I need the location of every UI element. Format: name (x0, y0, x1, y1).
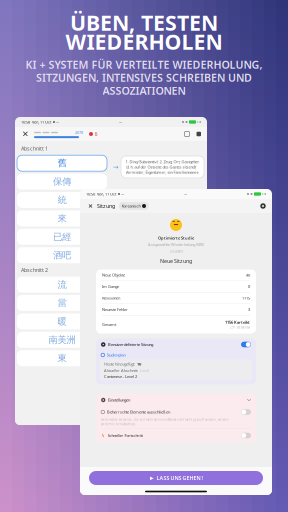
button[interactable]: ▶ (80, 467, 272, 488)
button[interactable]: Umschalten (241, 433, 251, 438)
button[interactable]: Tastatur (196, 132, 201, 136)
staticText: Im Gange (102, 284, 119, 289)
button[interactable]: 暖 (15, 312, 107, 331)
staticText: 4078 (75, 130, 83, 135)
staticText: ASSOZIATIONEN (102, 83, 185, 98)
staticText: Schneller Fortschritt (107, 433, 142, 438)
staticText: Revisionen (102, 295, 120, 301)
button[interactable]: Schließen (21, 128, 30, 139)
staticText: ··· (119, 118, 122, 126)
staticText: WIEDERHOLEN (65, 27, 222, 56)
staticText: Beherrschte Elemente ausschließen (107, 409, 170, 415)
staticText: 南美洲 (48, 334, 75, 346)
staticText: 10 (137, 361, 141, 367)
staticText: Optimierte Studie (158, 235, 194, 241)
button[interactable]: 舊 (15, 154, 107, 172)
staticText: 舊 (57, 157, 66, 169)
button[interactable]: Umschalten (241, 342, 251, 347)
staticText: 流 (57, 279, 66, 290)
button[interactable]: Koreanisch (119, 202, 148, 210)
staticText: Koreanisch (121, 203, 140, 209)
staticText: Neue Sitzung (160, 257, 192, 265)
staticText: Neueste Fehler (102, 307, 128, 312)
staticText: 東 (57, 352, 66, 364)
button[interactable]: Einstellungen (260, 203, 266, 209)
staticText: KI + SYSTEM FÜR VERTEILTE WIEDERHOLUNG, (25, 57, 262, 72)
button[interactable]: Studienplan (96, 350, 256, 359)
staticText: 10:50 Ven, 11 Oct (86, 191, 116, 197)
button[interactable]: 南美洲 (15, 331, 107, 349)
staticText: 1. Ding (Substantiv); 2. Zeug; Ort; Gast… (125, 159, 199, 175)
button[interactable]: Schließen (86, 200, 95, 211)
staticText: Benutzerdefinierte Sitzung (108, 342, 153, 347)
staticText: 酒吧 (53, 249, 71, 261)
staticText: Studienplan (107, 352, 126, 358)
staticText: SITZUNGEN, INTENSIVES SCHREIBEN UND (36, 70, 252, 85)
button[interactable]: Umschalten (241, 409, 251, 415)
button[interactable]: 保傳 (15, 172, 107, 191)
staticText: 3 Listen (169, 248, 182, 254)
staticText: ▶ (149, 475, 153, 481)
staticText: LASS UNS GEHEN ! (156, 474, 202, 482)
staticText: Level (140, 368, 149, 373)
staticText: Abschnitt 1 (21, 145, 48, 152)
staticText: 1156 Karteikt (225, 320, 250, 325)
staticText: 來 (57, 213, 66, 224)
staticText: 291 Elemental (230, 326, 250, 329)
staticText: weiterhin berücksichtigt. (101, 422, 136, 426)
button[interactable]: 東 (15, 349, 107, 367)
staticText: Einstellungen (108, 397, 130, 403)
button[interactable]: 來 (15, 209, 107, 228)
button[interactable]: Einstellungen (96, 393, 256, 406)
staticText: Gesamt (102, 322, 116, 327)
button[interactable]: 統 (15, 191, 107, 209)
staticText: ··· (56, 118, 59, 126)
staticText: 3 (248, 307, 250, 312)
staticText: 1115 (242, 295, 250, 301)
staticText: Cantonese - Level 2 (104, 374, 137, 379)
staticText: 保傳 (53, 176, 71, 187)
button[interactable]: Karten (184, 131, 189, 136)
staticText: ··· (121, 190, 124, 198)
button[interactable]: 已經 (15, 228, 107, 246)
staticText: Aktueller Abschnitt: (104, 368, 138, 373)
staticText: ··· (184, 190, 187, 198)
staticText: Sitzung (97, 202, 115, 210)
staticText: 暖 (57, 316, 66, 327)
staticText: ÜBEN, TESTEN (70, 8, 218, 37)
button[interactable]: 酒吧 (15, 246, 107, 264)
staticText: Abschnitt 2 (21, 266, 48, 273)
staticText: Ausgewählte Wiederholung (SRS) (148, 242, 204, 247)
staticText: 6 (94, 130, 97, 138)
button[interactable]: 流 (15, 275, 107, 294)
staticText: 統 (57, 194, 66, 206)
staticText: Beherrschte Elemente, die seit mehr als … (101, 418, 229, 421)
button[interactable]: 當 (15, 294, 107, 312)
staticText: 當 (57, 297, 66, 309)
staticText: 40 (246, 272, 250, 278)
staticText: → (113, 163, 119, 171)
staticText: Neue Objekte (102, 272, 125, 278)
staticText: 已經 (53, 231, 71, 243)
staticText: 0 (248, 284, 250, 289)
staticText: Heute hinzugefügt: (104, 361, 135, 367)
staticText: 10:58 Ven, 11 Oct (21, 119, 51, 125)
staticText: ✕ (22, 129, 29, 139)
